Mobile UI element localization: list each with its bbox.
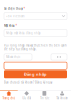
- staticText: Vui lòng nhập mã xác thực hiển thị bên c…: [4, 44, 67, 51]
- staticText: Bạn chưa có tài khoản? Đăng ký ngay: [4, 81, 52, 84]
- staticText: Mã xác thực: [6, 55, 20, 59]
- button[interactable]: Bạn chưa có tài khoản? Đăng ký ngay: [4, 81, 67, 84]
- staticText: Tin tức: [40, 96, 49, 100]
- button[interactable]: Đăng nhập: [4, 70, 67, 78]
- staticText: Số điện thoại: [4, 7, 23, 10]
- button[interactable]: Nhập mã: [4, 62, 67, 69]
- staticText: +84 Vietnam: [6, 14, 24, 18]
- button[interactable]: Ưu đãi: [18, 91, 36, 100]
- button[interactable]: Trang chủ: [0, 91, 18, 100]
- staticText: Nhập mật khẩu đăng nhập: [6, 31, 41, 35]
- button[interactable]: Mã xác thực: [4, 54, 32, 60]
- staticText: Ưu đãi: [22, 96, 31, 100]
- button[interactable]: Mã captcha: [51, 54, 67, 60]
- button[interactable]: Nhập mật khẩu đăng nhập: [4, 30, 67, 37]
- button[interactable]: +84 Vietnam: [4, 13, 67, 20]
- button[interactable]: Tin tức: [35, 91, 53, 100]
- staticText: Trang chủ: [2, 96, 15, 100]
- staticText: Tài khoản: [56, 96, 68, 100]
- staticText: Mật khẩu: [4, 24, 15, 27]
- button[interactable]: Tài khoản: [53, 91, 71, 100]
- staticText: Đăng nhập: [24, 72, 47, 77]
